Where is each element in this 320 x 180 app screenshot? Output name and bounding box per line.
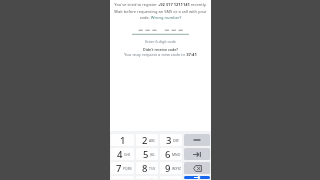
staticText: 1	[120, 134, 126, 146]
button[interactable]: 3	[160, 134, 182, 146]
button[interactable]	[110, 26, 211, 35]
staticText: DEF	[173, 138, 180, 143]
staticText: 3	[166, 134, 172, 146]
button[interactable]: 8	[136, 162, 158, 174]
button[interactable]: Backspace	[184, 162, 210, 174]
staticText: 2	[142, 134, 148, 146]
button[interactable]: 5	[136, 148, 158, 160]
staticText: Enter 6-digit code	[110, 39, 211, 44]
staticText: 8	[142, 162, 148, 174]
staticText: You've tried to register +92 317 1211141…	[113, 2, 208, 20]
staticText: +	[151, 176, 153, 179]
staticText: MNO	[172, 152, 181, 157]
staticText: ABC	[149, 138, 156, 143]
staticText: JKL	[150, 152, 155, 157]
staticText: GHI	[124, 152, 131, 157]
button[interactable]: 1	[111, 134, 134, 146]
staticText: 6	[165, 148, 171, 160]
button[interactable]: Done	[184, 176, 210, 179]
button[interactable]: 2	[136, 134, 158, 146]
button[interactable]: 6	[160, 148, 182, 160]
staticText: WXYZ	[172, 166, 181, 171]
staticText: 9	[165, 162, 171, 174]
staticText: 5	[143, 148, 149, 160]
staticText: 4	[117, 148, 123, 160]
button[interactable]: 9	[160, 162, 182, 174]
button[interactable]: 4	[111, 148, 134, 160]
button[interactable]: 7	[111, 162, 134, 174]
button[interactable]: Didn't receive code?	[110, 47, 211, 52]
staticText: 7	[116, 162, 122, 174]
staticText: TUV	[149, 166, 156, 171]
staticText: PQRS	[123, 166, 132, 171]
button[interactable]: Dash	[184, 134, 210, 146]
staticText: You may request a new code in 37:41	[110, 52, 211, 58]
button[interactable]: Next	[184, 148, 210, 160]
